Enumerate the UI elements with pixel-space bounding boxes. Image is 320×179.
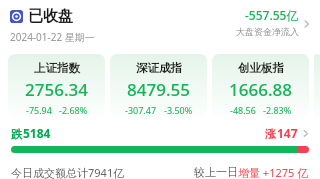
staticText: 5184 xyxy=(23,125,51,141)
button[interactable]: 创业板指 xyxy=(212,54,309,116)
staticText: 已收盘 xyxy=(28,7,73,26)
staticText: -557.55亿 xyxy=(245,7,299,23)
button[interactable]: 跌 xyxy=(11,125,309,141)
staticText: 创业板指 xyxy=(238,61,284,75)
staticText: 增量 +1275 亿 xyxy=(238,165,309,179)
staticText: 8479.55 xyxy=(127,78,190,101)
staticText: 今日成交额总计7941亿 xyxy=(11,165,125,179)
button[interactable] xyxy=(314,54,320,116)
staticText: -75.94 xyxy=(26,104,52,116)
staticText: -2.68% xyxy=(59,104,88,116)
button[interactable]: 今日成交额总计7941亿 xyxy=(11,165,309,179)
staticText: 较上一日 xyxy=(194,165,238,179)
button[interactable]: 已收盘 xyxy=(10,7,310,44)
button[interactable]: 上证指数 xyxy=(8,54,105,116)
staticText: 147 xyxy=(277,125,298,141)
staticText: 深证成指 xyxy=(136,61,182,75)
other: 查看涨跌家数详情 xyxy=(302,128,309,139)
staticText: 涨 xyxy=(265,127,276,141)
staticText: 大盘资金净流入 xyxy=(236,26,299,37)
button[interactable]: 深证成指 xyxy=(110,54,207,116)
other: 查看大盘资金详情 xyxy=(303,18,310,30)
staticText: -307.47 xyxy=(125,104,157,116)
staticText: -2.83% xyxy=(263,104,292,116)
staticText: -48.56 xyxy=(230,104,256,116)
staticText: 2024-01-22 星期一 xyxy=(10,30,95,44)
staticText: 2756.34 xyxy=(25,78,88,101)
staticText: -3.50% xyxy=(164,104,193,116)
staticText: 上证指数 xyxy=(34,61,80,75)
button[interactable] xyxy=(11,146,309,153)
staticText: 跌 xyxy=(11,127,22,141)
staticText: 1666.88 xyxy=(229,78,292,101)
